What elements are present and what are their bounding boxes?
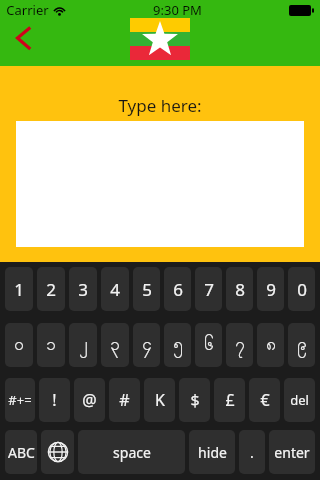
button[interactable]: enter: [269, 430, 315, 474]
staticText: 9:30 PM: [153, 1, 202, 19]
button[interactable]: €: [249, 378, 280, 422]
staticText: #: [119, 389, 130, 411]
button[interactable]: 3: [69, 267, 97, 311]
button[interactable]: ABC: [5, 430, 37, 474]
staticText: $: [190, 389, 200, 411]
staticText: 2: [46, 278, 56, 301]
staticText: ၁: [46, 333, 56, 358]
staticText: ၀: [14, 333, 24, 358]
button[interactable]: ၈: [257, 323, 284, 367]
button[interactable]: #: [109, 378, 140, 422]
button[interactable]: 9: [257, 267, 284, 311]
staticText: Carrier: [6, 1, 49, 19]
button[interactable]: 5: [133, 267, 160, 311]
staticText: £: [225, 389, 235, 411]
button[interactable]: 6: [164, 267, 191, 311]
staticText: 4: [110, 278, 120, 301]
staticText: 8: [235, 278, 245, 301]
button[interactable]: 2: [37, 267, 65, 311]
button[interactable]: 4: [101, 267, 129, 311]
button[interactable]: ၁: [37, 323, 65, 367]
button[interactable]: del: [284, 378, 315, 422]
staticText: .: [250, 443, 254, 462]
staticText: 1: [14, 278, 24, 301]
staticText: 7: [204, 278, 214, 301]
button[interactable]: £: [214, 378, 245, 422]
button[interactable]: ၄: [133, 323, 160, 367]
staticText: del: [290, 391, 309, 409]
button[interactable]: 7: [195, 267, 222, 311]
button[interactable]: !: [39, 378, 70, 422]
button[interactable]: ၆: [195, 323, 222, 367]
button[interactable]: @: [74, 378, 105, 422]
staticText: ၂: [79, 333, 88, 358]
staticText: ၅: [173, 333, 183, 358]
staticText: @: [82, 389, 97, 411]
staticText: ၆: [204, 333, 214, 358]
button[interactable]: ၀: [5, 323, 33, 367]
staticText: 6: [173, 278, 183, 301]
staticText: ၉: [297, 333, 307, 358]
staticText: ၈: [266, 333, 276, 358]
staticText: 9: [266, 278, 276, 301]
staticText: ၄: [142, 333, 152, 358]
button[interactable]: K: [144, 378, 175, 422]
staticText: 3: [78, 278, 88, 301]
button[interactable]: 8: [226, 267, 253, 311]
button[interactable]: space: [78, 430, 185, 474]
button[interactable]: Change keyboard language: [41, 430, 74, 474]
button[interactable]: ၇: [226, 323, 253, 367]
button[interactable]: .: [239, 430, 265, 474]
staticText: ၃: [110, 333, 120, 358]
staticText: ၇: [235, 333, 245, 358]
staticText: 5: [142, 278, 152, 301]
button[interactable]: ၅: [164, 323, 191, 367]
button[interactable]: #+=: [5, 378, 35, 422]
staticText: hide: [198, 443, 227, 462]
button[interactable]: ၉: [288, 323, 315, 367]
staticText: Type here:: [118, 94, 202, 117]
button[interactable]: ၂: [69, 323, 97, 367]
staticText: 0: [297, 278, 307, 301]
button[interactable]: hide: [189, 430, 235, 474]
button[interactable]: $: [179, 378, 210, 422]
staticText: space: [113, 443, 151, 462]
staticText: !: [52, 389, 57, 411]
button[interactable]: ၃: [101, 323, 129, 367]
staticText: K: [155, 389, 165, 411]
staticText: #+=: [8, 391, 32, 409]
staticText: enter: [274, 443, 310, 462]
button[interactable]: 0: [288, 267, 315, 311]
button[interactable]: 1: [5, 267, 33, 311]
staticText: €: [260, 389, 270, 411]
staticText: ABC: [8, 443, 35, 462]
button[interactable]: Back: [7, 21, 41, 55]
